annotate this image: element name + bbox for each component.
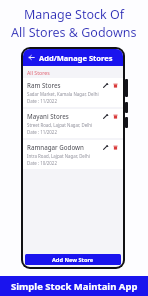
button[interactable]: Edit store xyxy=(101,112,110,121)
button[interactable]: Mayani Stores xyxy=(23,109,123,138)
button[interactable]: Edit store xyxy=(101,81,110,90)
button[interactable]: Delete store xyxy=(111,112,120,121)
staticText: Date : 11/2022 xyxy=(27,98,57,104)
staticText: Ram Stores xyxy=(27,81,61,89)
staticText: All Stores & Godowns xyxy=(11,24,137,41)
staticText: Mayani Stores xyxy=(27,112,69,120)
staticText: Simple Stock Maintain App xyxy=(11,280,138,293)
staticText: Sadar Market, Kamala Nagar, Delhi xyxy=(27,91,99,97)
button[interactable]: Delete store xyxy=(111,81,120,90)
button[interactable]: Back xyxy=(27,53,36,62)
staticText: Add New Store xyxy=(52,256,94,264)
staticText: Date : 11/2022 xyxy=(27,129,57,135)
button[interactable]: Add New Store xyxy=(25,254,121,265)
staticText: Add/Manage Stores xyxy=(39,53,113,63)
staticText: Date : 10/2022 xyxy=(27,160,57,166)
button[interactable]: Ram Stores xyxy=(23,78,123,107)
button[interactable]: Edit store xyxy=(101,143,110,152)
staticText: Street Road, Lajpat Nagar, Delhi xyxy=(27,122,93,128)
button[interactable]: Delete store xyxy=(111,143,120,152)
staticText: All Stores xyxy=(27,69,50,76)
button[interactable]: Simple Stock Maintain App xyxy=(0,276,148,296)
button[interactable]: Ramnagar Godown xyxy=(23,140,123,169)
staticText: Ramnagar Godown xyxy=(27,143,84,151)
staticText: Intra Road, Lajpat Nagar, Delhi xyxy=(27,153,90,159)
staticText: Manage Stock Of xyxy=(24,6,125,23)
